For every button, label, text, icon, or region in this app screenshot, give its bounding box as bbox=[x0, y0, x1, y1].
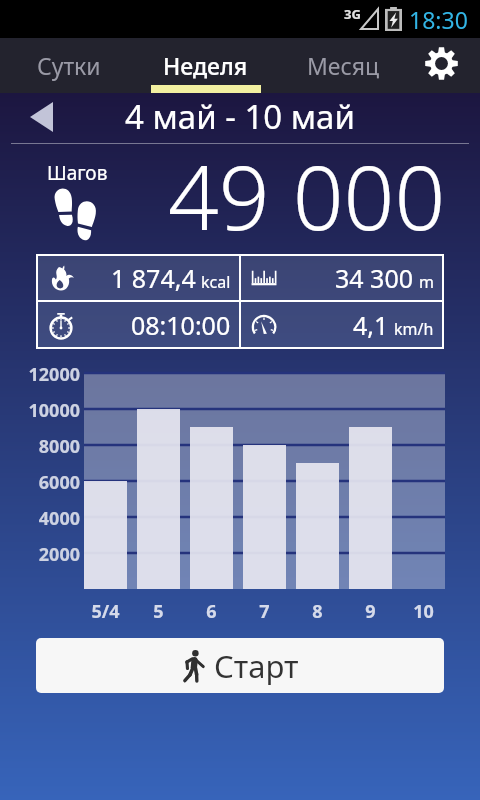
staticText: 18:30 bbox=[409, 4, 468, 35]
staticText: 4 май - 10 май bbox=[125, 94, 355, 139]
button[interactable]: Previous period bbox=[20, 96, 62, 138]
staticText: 1 874,4 bbox=[111, 261, 196, 295]
staticText: 4,1 bbox=[353, 308, 389, 342]
staticText: 6 bbox=[190, 599, 233, 624]
staticText: kcal bbox=[201, 271, 231, 293]
staticText: 8000 bbox=[4, 434, 80, 459]
staticText: Шагов bbox=[47, 160, 108, 186]
staticText: 2000 bbox=[4, 542, 80, 567]
staticText: 7 bbox=[243, 599, 286, 624]
button[interactable]: Settings bbox=[411, 38, 480, 93]
staticText: 10000 bbox=[4, 398, 80, 423]
staticText: Старт bbox=[214, 645, 299, 687]
button[interactable]: Старт bbox=[36, 638, 444, 693]
staticText: Сутки bbox=[37, 50, 101, 81]
staticText: 12000 bbox=[4, 362, 80, 387]
staticText: 5 bbox=[137, 599, 180, 624]
staticText: m bbox=[419, 271, 434, 293]
button[interactable]: Сутки bbox=[0, 38, 137, 93]
staticText: 6000 bbox=[4, 470, 80, 495]
staticText: km/h bbox=[394, 318, 434, 340]
staticText: Неделя bbox=[163, 50, 248, 81]
staticText: 5/4 bbox=[84, 599, 127, 624]
staticText: 10 bbox=[402, 599, 445, 624]
staticText: 9 bbox=[349, 599, 392, 624]
staticText: 34 300 bbox=[335, 261, 414, 295]
staticText: Месяц bbox=[307, 50, 379, 81]
staticText: 3G bbox=[344, 5, 361, 23]
staticText: 49 000 bbox=[168, 135, 446, 256]
staticText: 4000 bbox=[4, 506, 80, 531]
button[interactable]: Неделя bbox=[137, 38, 274, 93]
staticText: 08:10:00 bbox=[131, 308, 231, 342]
staticText: 8 bbox=[296, 599, 339, 624]
button[interactable]: Месяц bbox=[274, 38, 411, 93]
